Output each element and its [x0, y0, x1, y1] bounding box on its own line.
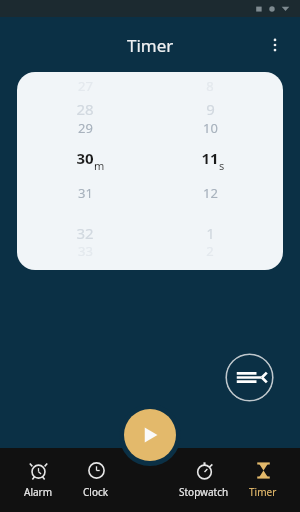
button[interactable]: Alarm [4, 448, 72, 512]
button[interactable]: 9 [184, 99, 236, 117]
button[interactable]: Timer presets [225, 353, 274, 402]
staticText: Stopwatch [179, 485, 229, 499]
staticText: 30 [76, 148, 94, 166]
staticText: Clock [83, 485, 109, 499]
staticText: 1 [206, 223, 215, 241]
staticText: 12 [203, 184, 218, 202]
staticText: 2 [206, 242, 214, 260]
staticText: Timer [127, 34, 174, 57]
staticText: 11 [201, 148, 219, 166]
staticText: Alarm [24, 485, 53, 499]
staticText: Timer [249, 485, 277, 499]
staticText: 33 [78, 242, 93, 260]
button[interactable]: 32 [59, 223, 111, 241]
staticText: 29 [78, 119, 93, 137]
staticText: 9 [206, 99, 215, 117]
button[interactable]: 10 [184, 119, 236, 137]
button[interactable]: Clock [62, 448, 130, 512]
button[interactable]: 11 [184, 148, 236, 166]
button[interactable]: Stopwatch [170, 448, 238, 512]
staticText: 31 [78, 184, 93, 202]
staticText: s [219, 158, 225, 173]
button[interactable]: 29 [59, 119, 111, 137]
staticText: 8 [206, 77, 214, 95]
button[interactable]: 28 [59, 99, 111, 117]
staticText: 32 [76, 223, 94, 241]
button[interactable]: 12 [184, 184, 236, 202]
button[interactable]: 30 [59, 148, 111, 166]
staticText: 27 [78, 77, 93, 95]
staticText: 10 [203, 119, 218, 137]
button[interactable]: 1 [184, 223, 236, 241]
staticText: m [94, 158, 105, 173]
button[interactable]: Start timer [124, 409, 176, 461]
button[interactable]: Timer [229, 448, 297, 512]
staticText: 28 [76, 99, 94, 117]
button[interactable]: 31 [59, 184, 111, 202]
button[interactable]: More options [258, 28, 292, 62]
